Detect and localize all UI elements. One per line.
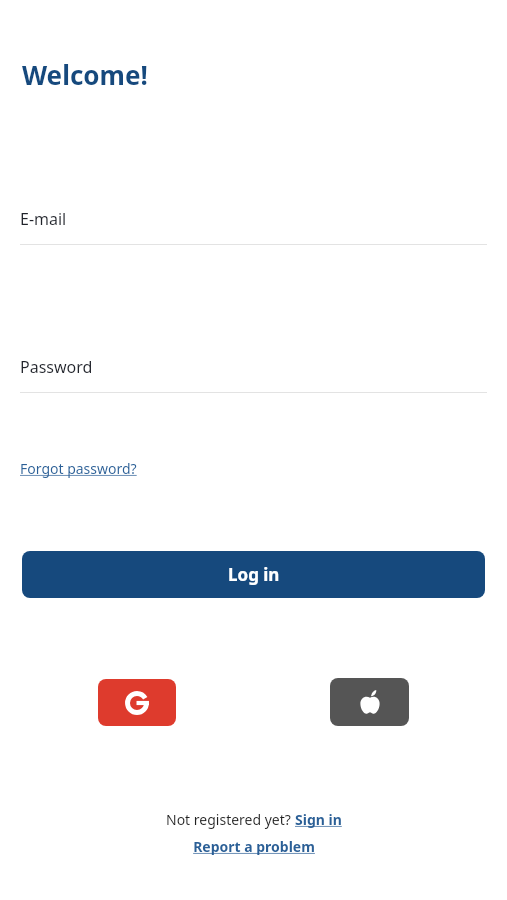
staticText: Password bbox=[20, 356, 93, 378]
button[interactable]: Forgot password? bbox=[20, 459, 137, 478]
staticText: Forgot password? bbox=[20, 459, 137, 478]
button[interactable]: Password bbox=[20, 356, 487, 393]
button[interactable]: Report a problem bbox=[193, 837, 315, 856]
staticText: Report a problem bbox=[193, 837, 315, 856]
button[interactable]: Sign in with Apple bbox=[330, 678, 409, 726]
button[interactable]: Sign in with Google bbox=[98, 679, 176, 726]
staticText: Log in bbox=[228, 563, 280, 586]
button[interactable]: Sign in bbox=[295, 810, 342, 829]
staticText: Not registered yet? bbox=[166, 810, 295, 829]
button[interactable]: E-mail bbox=[20, 208, 487, 245]
button[interactable]: Log in bbox=[22, 551, 485, 598]
staticText: E-mail bbox=[20, 208, 67, 230]
staticText: Sign in bbox=[295, 810, 342, 829]
staticText: Welcome! bbox=[22, 57, 148, 92]
